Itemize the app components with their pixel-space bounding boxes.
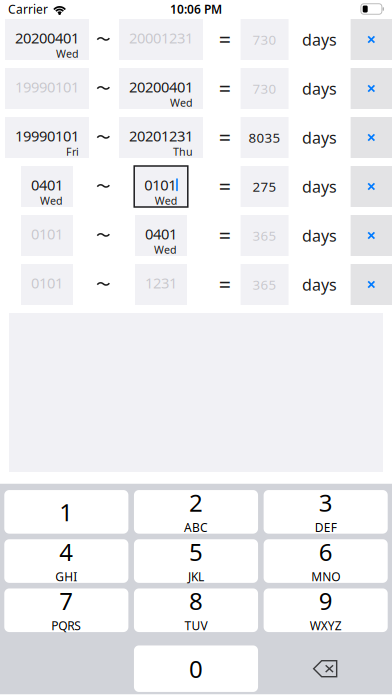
- staticText: Wed: [40, 193, 63, 208]
- button[interactable]: 275: [241, 166, 289, 207]
- button[interactable]: 20001231: [119, 19, 203, 60]
- staticText: 0: [189, 653, 203, 685]
- staticText: Thu: [173, 144, 193, 159]
- button[interactable]: 8035: [241, 117, 289, 158]
- staticText: 〜: [96, 275, 111, 293]
- button[interactable]: 4: [4, 539, 128, 583]
- staticText: days: [302, 274, 337, 295]
- button[interactable]: 7: [4, 588, 128, 632]
- staticText: =: [219, 25, 231, 54]
- staticText: 0101: [144, 175, 176, 194]
- button[interactable]: 0101: [21, 264, 73, 305]
- staticText: 2: [189, 486, 203, 518]
- staticText: 20200401: [129, 77, 193, 96]
- staticText: WXYZ: [310, 618, 342, 634]
- button[interactable]: 1: [4, 490, 128, 534]
- staticText: 275: [253, 178, 277, 195]
- button[interactable]: 0101: [134, 166, 188, 207]
- button[interactable]: Clear row: [351, 117, 392, 158]
- staticText: 〜: [96, 226, 111, 244]
- button[interactable]: 20200401: [119, 68, 203, 109]
- staticText: 0401: [31, 175, 63, 194]
- staticText: days: [302, 225, 337, 246]
- button[interactable]: 9: [264, 588, 388, 632]
- button[interactable]: 5: [134, 539, 258, 583]
- button[interactable]: 365: [241, 264, 289, 305]
- staticText: 365: [253, 276, 277, 293]
- button[interactable]: 19990101: [5, 117, 89, 158]
- button[interactable]: 0401: [135, 215, 187, 256]
- staticText: 20201231: [129, 126, 193, 145]
- staticText: MNO: [311, 568, 340, 584]
- staticText: 8: [189, 585, 203, 617]
- staticText: 4: [59, 536, 73, 567]
- staticText: 1231: [145, 273, 177, 292]
- staticText: days: [302, 176, 337, 197]
- staticText: GHI: [55, 568, 77, 584]
- staticText: =: [219, 221, 231, 250]
- staticText: 730: [253, 31, 277, 48]
- staticText: Carrier: [8, 1, 48, 17]
- button[interactable]: 3: [264, 490, 388, 534]
- button[interactable]: 365: [241, 215, 289, 256]
- button[interactable]: Clear row: [351, 68, 392, 109]
- button[interactable]: 6: [264, 539, 388, 583]
- button[interactable]: 730: [241, 19, 289, 60]
- staticText: days: [302, 78, 337, 99]
- staticText: =: [219, 270, 231, 299]
- staticText: JKL: [188, 568, 204, 584]
- staticText: 〜: [96, 79, 111, 97]
- staticText: PQRS: [51, 618, 81, 634]
- staticText: =: [219, 74, 231, 103]
- staticText: =: [219, 172, 231, 201]
- button[interactable]: 8: [134, 588, 258, 632]
- staticText: Wed: [155, 193, 178, 208]
- staticText: 20001231: [129, 28, 193, 47]
- staticText: days: [302, 29, 337, 50]
- staticText: =: [219, 123, 231, 152]
- staticText: 7: [59, 585, 73, 617]
- staticText: Wed: [154, 242, 177, 257]
- button[interactable]: 20201231: [119, 117, 203, 158]
- button[interactable]: Clear row: [351, 166, 392, 207]
- staticText: days: [302, 127, 337, 148]
- staticText: 730: [253, 80, 277, 97]
- button[interactable]: Delete: [264, 645, 388, 692]
- staticText: 0401: [145, 224, 177, 243]
- staticText: 20200401: [15, 28, 79, 47]
- button[interactable]: 0401: [21, 166, 73, 207]
- button[interactable]: 20200401: [5, 19, 89, 60]
- button[interactable]: Clear row: [351, 215, 392, 256]
- staticText: ABC: [184, 519, 208, 535]
- button[interactable]: 1231: [135, 264, 187, 305]
- staticText: 〜: [96, 177, 111, 195]
- staticText: Wed: [170, 95, 193, 110]
- staticText: 8035: [249, 129, 281, 146]
- staticText: 9: [319, 585, 333, 617]
- staticText: 5: [189, 536, 203, 567]
- staticText: Wed: [56, 46, 79, 61]
- staticText: 10:06 PM: [170, 1, 222, 17]
- staticText: 1: [59, 496, 73, 528]
- staticText: 0101: [31, 273, 63, 292]
- staticText: 365: [253, 227, 277, 244]
- staticText: 6: [319, 536, 333, 567]
- staticText: DEF: [315, 519, 337, 535]
- staticText: 3: [319, 486, 333, 518]
- button[interactable]: Clear row: [351, 19, 392, 60]
- button[interactable]: Clear row: [351, 264, 392, 305]
- staticText: 〜: [96, 30, 111, 48]
- button[interactable]: 19990101: [5, 68, 89, 109]
- staticText: 19990101: [15, 126, 79, 145]
- button[interactable]: 730: [241, 68, 289, 109]
- button[interactable]: 0: [134, 645, 258, 692]
- staticText: TUV: [184, 618, 207, 634]
- staticText: 〜: [96, 128, 111, 146]
- button[interactable]: 2: [134, 490, 258, 534]
- staticText: 19990101: [15, 77, 79, 96]
- button[interactable]: 0101: [21, 215, 73, 256]
- staticText: Fri: [66, 144, 79, 159]
- staticText: 0101: [31, 224, 63, 243]
